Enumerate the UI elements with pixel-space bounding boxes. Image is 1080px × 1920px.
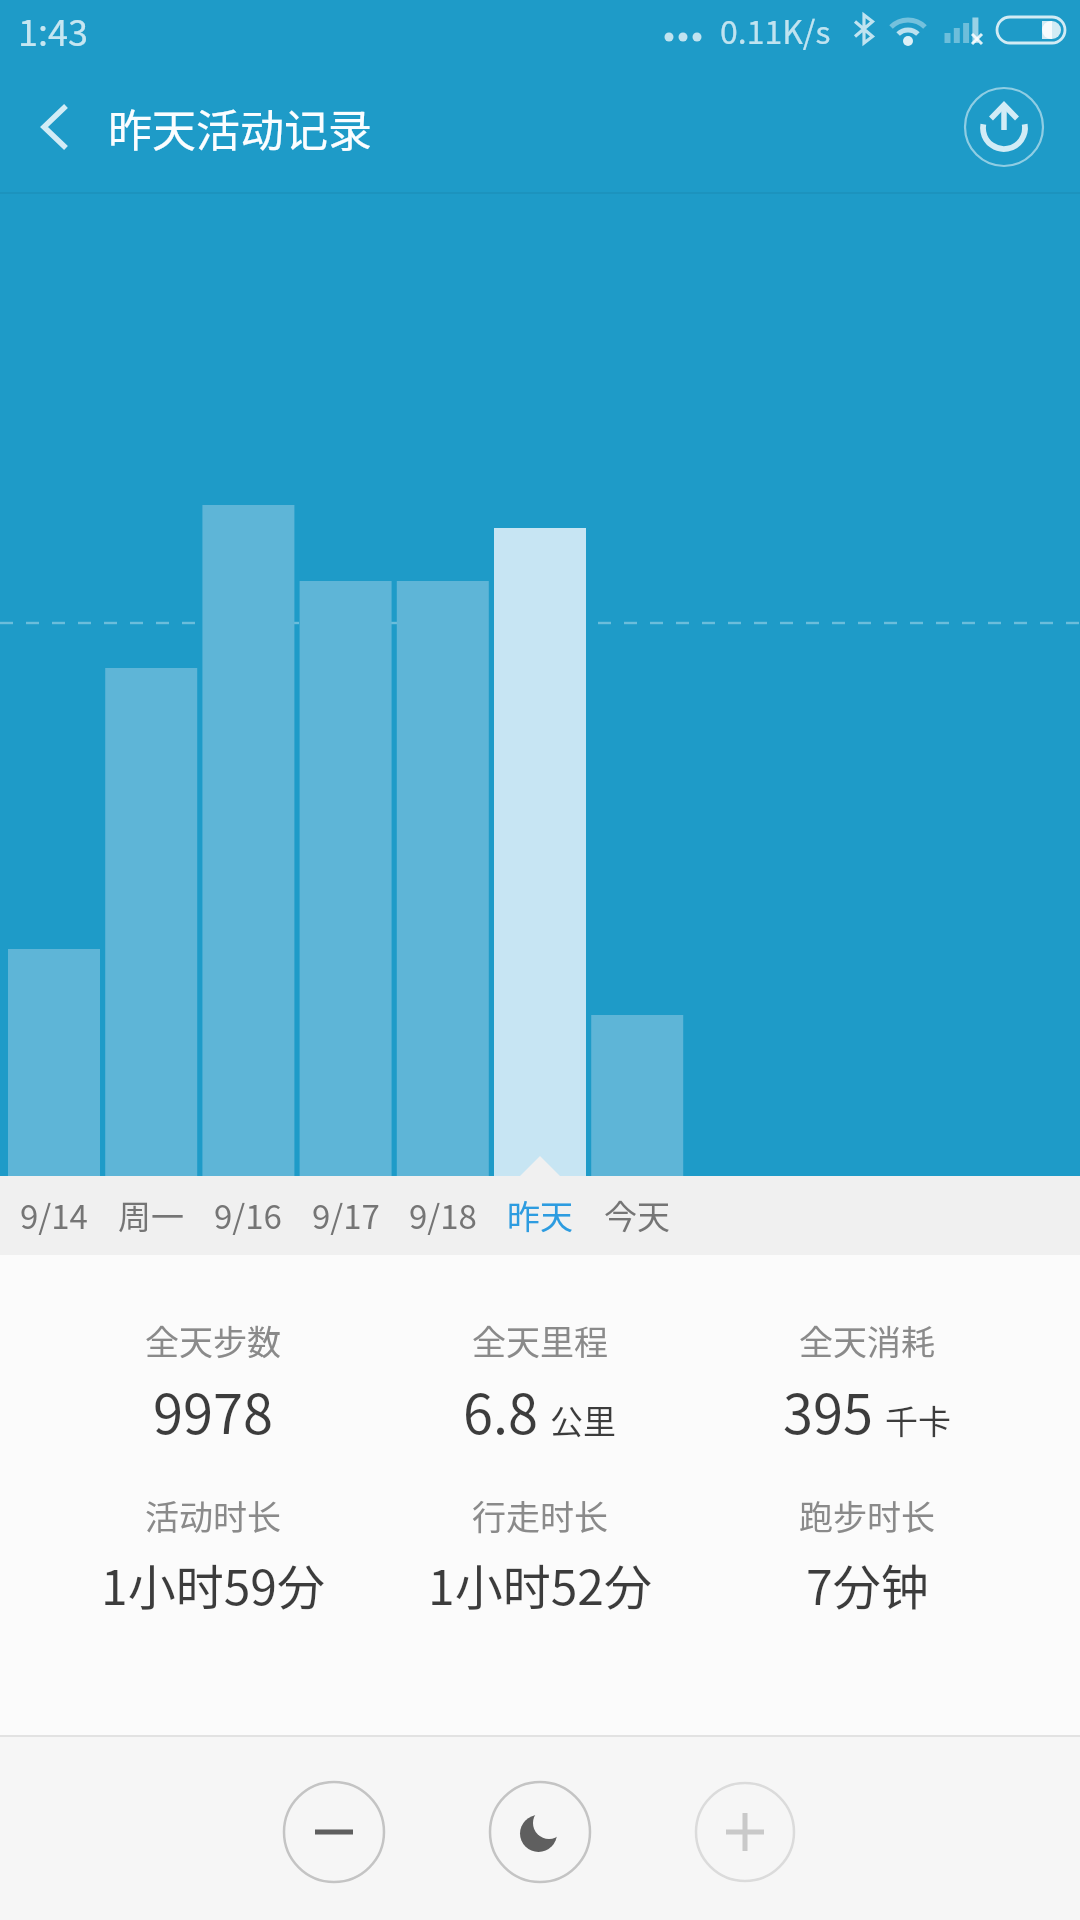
- staticText: 1小时59分: [101, 1549, 325, 1615]
- button[interactable]: 今天: [589, 1186, 685, 1244]
- staticText: 活动时长: [145, 1491, 281, 1537]
- staticText: 跑步时长: [799, 1491, 935, 1537]
- staticText: 9/16: [214, 1191, 282, 1239]
- button[interactable]: 周一: [103, 1186, 199, 1244]
- button[interactable]: [695, 1782, 795, 1882]
- staticText: 9/18: [409, 1191, 477, 1239]
- staticText: 全天消耗: [799, 1316, 935, 1362]
- staticText: 6.8 公里: [463, 1371, 617, 1443]
- button[interactable]: 昨天: [492, 1186, 588, 1244]
- staticText: 全天里程: [472, 1316, 608, 1362]
- button[interactable]: [20, 85, 90, 169]
- staticText: 0.11K/s: [720, 7, 831, 53]
- button[interactable]: [960, 83, 1048, 171]
- button[interactable]: [490, 1782, 590, 1882]
- staticText: 7分钟: [806, 1549, 929, 1615]
- staticText: 昨天: [507, 1191, 573, 1239]
- staticText: 1小时52分: [428, 1549, 652, 1615]
- staticText: 9/17: [312, 1191, 380, 1239]
- button[interactable]: [284, 1782, 384, 1882]
- staticText: 今天: [604, 1191, 670, 1239]
- button[interactable]: 9/14: [6, 1186, 102, 1244]
- button[interactable]: 9/17: [298, 1186, 394, 1244]
- staticText: 395 千卡: [783, 1371, 952, 1443]
- staticText: 周一: [118, 1191, 184, 1239]
- button[interactable]: 9/18: [395, 1186, 491, 1244]
- staticText: 行走时长: [472, 1491, 608, 1537]
- staticText: 9978: [153, 1371, 273, 1443]
- button[interactable]: 9/16: [200, 1186, 296, 1244]
- staticText: 昨天活动记录: [108, 96, 372, 160]
- staticText: 1:43: [18, 4, 88, 56]
- staticText: 全天步数: [145, 1316, 281, 1362]
- staticText: 9/14: [20, 1191, 88, 1239]
